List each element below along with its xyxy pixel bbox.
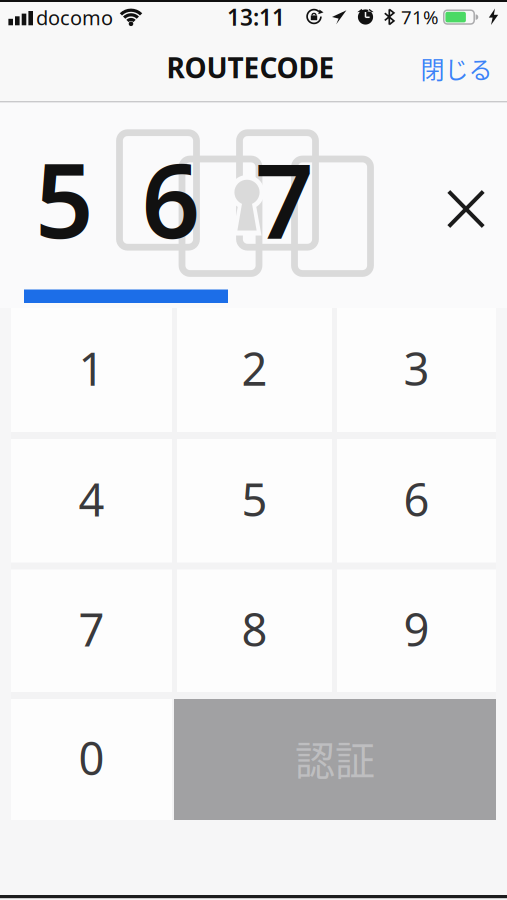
- button[interactable]: 認証: [174, 699, 496, 820]
- staticText: docomo: [36, 4, 113, 31]
- staticText: 7: [255, 130, 314, 267]
- staticText: 4: [78, 469, 104, 529]
- staticText: 0: [78, 728, 104, 788]
- staticText: 5: [241, 469, 267, 529]
- staticText: 6: [141, 130, 200, 267]
- staticText: 13:11: [227, 2, 285, 32]
- button[interactable]: 6: [337, 439, 496, 562]
- staticText: 9: [403, 599, 429, 659]
- button[interactable]: 4: [11, 439, 172, 562]
- button[interactable]: 8: [177, 569, 332, 692]
- button[interactable]: 0: [11, 699, 172, 820]
- staticText: 6: [403, 469, 429, 529]
- button[interactable]: 閉じる: [401, 46, 507, 90]
- button[interactable]: Clear: [447, 190, 485, 228]
- staticText: 8: [241, 599, 267, 659]
- staticText: 認証: [295, 729, 375, 787]
- staticText: 3: [403, 338, 429, 398]
- staticText: ROUTECODE: [166, 49, 334, 86]
- staticText: 5: [35, 130, 94, 267]
- staticText: 7: [78, 599, 104, 659]
- button[interactable]: 9: [337, 569, 496, 692]
- staticText: 2: [241, 338, 267, 398]
- button[interactable]: 2: [177, 308, 332, 432]
- staticText: 1: [78, 338, 104, 398]
- button[interactable]: 3: [337, 308, 496, 432]
- button[interactable]: 5: [177, 439, 332, 562]
- button[interactable]: 1: [11, 308, 172, 432]
- staticText: 閉じる: [420, 51, 492, 85]
- button[interactable]: 7: [11, 569, 172, 692]
- staticText: 71%: [401, 5, 439, 29]
